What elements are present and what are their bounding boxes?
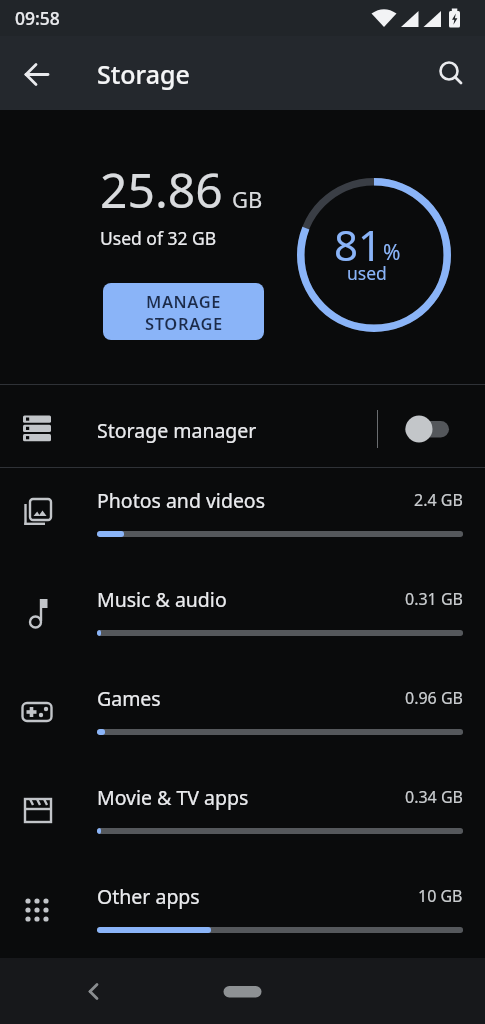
- staticText: 10 GB: [418, 885, 463, 905]
- staticText: 0.31 GB: [405, 588, 463, 608]
- staticText: 2.4 GB: [414, 489, 463, 509]
- staticText: Storage: [97, 57, 190, 91]
- staticText: MANAGE: [146, 290, 222, 312]
- staticText: 81: [334, 216, 383, 266]
- staticText: 0.34 GB: [405, 786, 463, 806]
- staticText: Music & audio: [97, 586, 227, 613]
- staticText: 09:58: [15, 6, 60, 30]
- staticText: STORAGE: [145, 312, 223, 334]
- staticText: Used of 32 GB: [100, 226, 217, 250]
- staticText: 25.86: [100, 157, 223, 222]
- staticText: 0.96 GB: [405, 687, 463, 707]
- staticText: GB: [232, 184, 263, 214]
- staticText: Other apps: [97, 883, 200, 910]
- staticText: Games: [97, 685, 161, 712]
- staticText: used: [347, 261, 387, 285]
- staticText: Storage manager: [97, 417, 257, 444]
- staticText: Photos and videos: [97, 487, 266, 514]
- staticText: Movie & TV apps: [97, 784, 249, 811]
- staticText: %: [383, 238, 401, 267]
